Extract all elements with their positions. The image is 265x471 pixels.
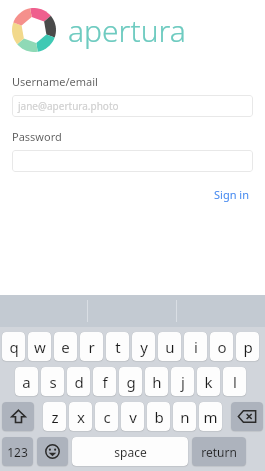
staticText: return — [201, 444, 237, 460]
staticText: Sign in — [214, 187, 249, 202]
staticText: d — [74, 372, 84, 392]
staticText: n — [180, 407, 190, 427]
staticText: g — [126, 372, 136, 392]
staticText: c — [103, 407, 111, 427]
staticText: Username/email — [12, 74, 98, 89]
staticText: z — [51, 407, 59, 427]
staticText: e — [61, 337, 70, 357]
button[interactable]: s — [41, 367, 64, 396]
button[interactable]: jane@apertura.photo — [12, 95, 253, 117]
staticText: y — [140, 337, 148, 357]
staticText: p — [243, 337, 253, 357]
staticText: f — [102, 372, 108, 392]
button[interactable]: p — [236, 332, 259, 361]
button[interactable]: Sign in — [210, 184, 253, 205]
button[interactable]: r — [80, 332, 103, 361]
staticText: 123 — [7, 444, 28, 460]
button[interactable]: y — [132, 332, 155, 361]
button[interactable]: q — [2, 332, 25, 361]
staticText: m — [203, 407, 218, 427]
button[interactable]: return — [192, 437, 246, 466]
button[interactable]: 123 — [2, 437, 33, 466]
staticText: j — [181, 372, 185, 392]
staticText: b — [154, 407, 164, 427]
staticText: k — [204, 372, 213, 392]
button[interactable]: i — [184, 332, 207, 361]
button[interactable]: a — [15, 367, 38, 396]
staticText: s — [49, 372, 57, 392]
button[interactable]: space — [72, 437, 188, 466]
staticText: r — [88, 337, 95, 357]
button[interactable]: f — [93, 367, 116, 396]
button[interactable]: v — [121, 402, 144, 431]
button[interactable]: c — [95, 402, 118, 431]
staticText: t — [115, 337, 121, 357]
button[interactable]: u — [158, 332, 181, 361]
staticText: a — [22, 372, 31, 392]
button[interactable]: n — [173, 402, 196, 431]
button[interactable]: o — [210, 332, 233, 361]
staticText: jane@apertura.photo — [18, 99, 119, 113]
button[interactable]: j — [171, 367, 194, 396]
staticText: q — [9, 337, 19, 357]
button[interactable]: t — [106, 332, 129, 361]
staticText: o — [217, 337, 227, 357]
staticText: l — [233, 372, 237, 392]
staticText: space — [114, 444, 147, 460]
button[interactable]: Shift — [2, 402, 34, 431]
button[interactable]: b — [147, 402, 170, 431]
button[interactable]: g — [119, 367, 142, 396]
button[interactable]: l — [223, 367, 246, 396]
staticText: apertura — [68, 10, 186, 51]
staticText: u — [165, 337, 175, 357]
staticText: h — [152, 372, 162, 392]
button[interactable]: h — [145, 367, 168, 396]
button[interactable]: d — [67, 367, 90, 396]
button[interactable]: z — [43, 402, 66, 431]
button[interactable]: e — [54, 332, 77, 361]
button[interactable]: m — [199, 402, 222, 431]
button[interactable]: Emoji — [37, 437, 68, 466]
staticText: Password — [12, 129, 62, 144]
button[interactable]: x — [69, 402, 92, 431]
button[interactable]: w — [28, 332, 51, 361]
staticText: i — [194, 337, 198, 357]
button[interactable]: Backspace — [231, 402, 263, 431]
button[interactable]: k — [197, 367, 220, 396]
staticText: v — [129, 407, 137, 427]
button[interactable] — [12, 150, 253, 172]
staticText: x — [77, 407, 85, 427]
staticText: w — [34, 337, 46, 357]
